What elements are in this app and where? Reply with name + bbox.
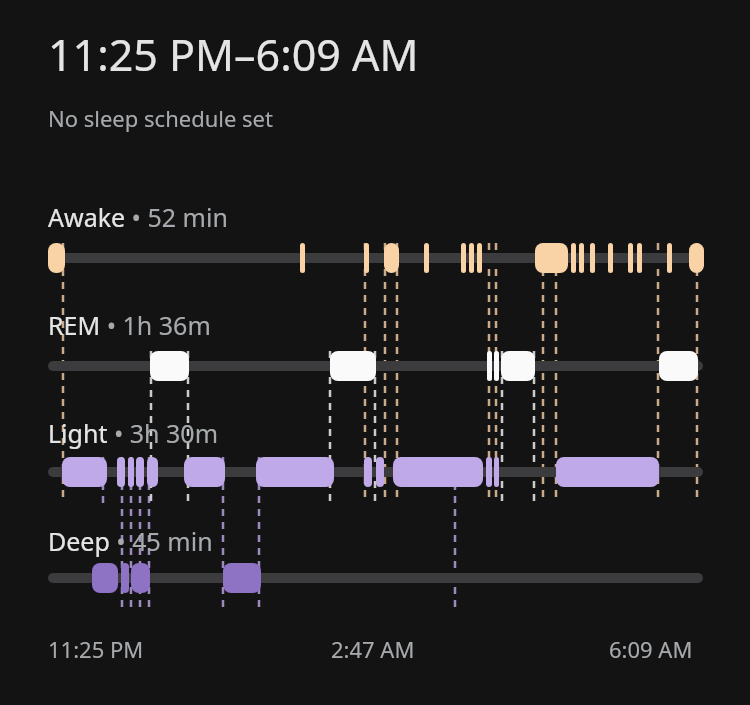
button[interactable]: Sleep stages chart — [0, 0, 750, 705]
button[interactable]: Light • 3h 30m — [48, 416, 219, 450]
button[interactable]: Awake • 52 min — [48, 200, 228, 234]
staticText: 11:25 PM–6:09 AM — [48, 25, 419, 84]
button[interactable]: Deep • 45 min — [48, 524, 213, 558]
staticText: 2:47 AM — [331, 634, 415, 664]
button[interactable]: REM • 1h 36m — [48, 308, 211, 342]
staticText: No sleep schedule set — [48, 103, 273, 133]
staticText: 11:25 PM — [48, 634, 144, 664]
staticText: 6:09 AM — [609, 634, 693, 664]
